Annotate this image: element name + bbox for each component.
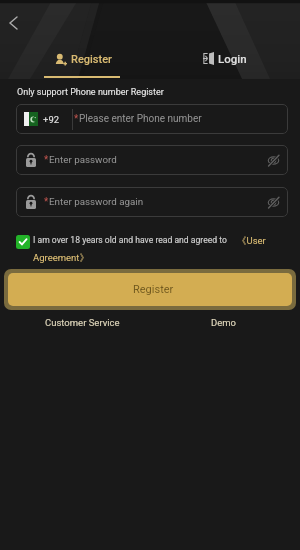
staticText: Demo	[211, 317, 237, 328]
staticText: Enter password again	[49, 196, 144, 207]
staticText: Register	[133, 283, 174, 296]
staticText: +92	[43, 114, 60, 125]
button[interactable]: I am over 18 years old and have read and…	[16, 235, 292, 264]
button[interactable]: Back	[0, 10, 26, 36]
button[interactable]: Show password	[260, 147, 286, 173]
staticText: *	[74, 113, 79, 125]
button[interactable]: Register	[40, 44, 124, 79]
staticText: 《User	[237, 235, 266, 247]
staticText: Customer Service	[45, 317, 120, 328]
staticText: Only support Phone number Register	[17, 87, 164, 98]
button[interactable]: *	[16, 187, 288, 217]
staticText: *	[44, 154, 49, 166]
staticText: Agreement》	[33, 252, 89, 264]
button[interactable]: *	[16, 145, 288, 175]
button[interactable]: Show password	[260, 189, 286, 215]
button[interactable]: +92	[16, 104, 288, 134]
button[interactable]: Register	[4, 269, 296, 310]
staticText: I am over 18 years old and have read and…	[33, 235, 227, 245]
staticText: *	[44, 196, 49, 208]
button[interactable]: Customer Service	[34, 313, 130, 331]
staticText: Login	[218, 52, 247, 65]
button[interactable]: Login	[196, 44, 252, 79]
staticText: Enter password	[49, 154, 117, 165]
staticText: Register	[71, 53, 112, 66]
button[interactable]: Demo	[196, 313, 252, 331]
staticText: Please enter Phone number	[79, 113, 202, 125]
